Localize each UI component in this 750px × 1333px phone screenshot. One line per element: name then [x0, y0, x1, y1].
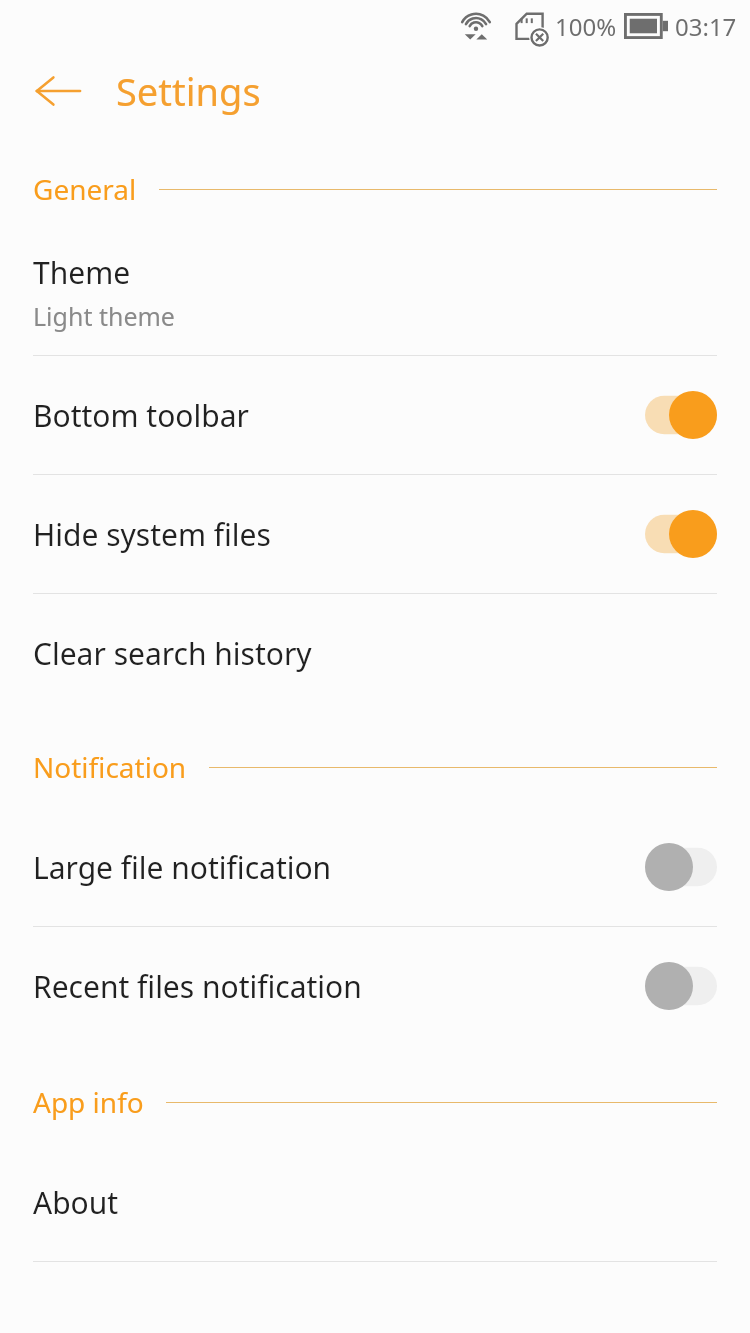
button[interactable]: About [0, 1143, 750, 1261]
staticText: About [33, 1182, 119, 1223]
button[interactable]: Clear search history [0, 594, 750, 712]
staticText: Theme [33, 252, 131, 293]
staticText: App info [33, 1083, 144, 1121]
staticText: 100% [555, 10, 617, 43]
staticText: Notification [33, 748, 187, 786]
staticText: Recent files notification [33, 966, 645, 1007]
button[interactable]: Bottom toolbar [0, 356, 750, 474]
staticText: Light theme [33, 299, 175, 333]
staticText: Large file notification [33, 847, 645, 888]
staticText: Clear search history [33, 633, 312, 674]
button[interactable]: Hide system files [0, 475, 750, 593]
button[interactable]: Theme [0, 238, 750, 355]
button[interactable]: Back [22, 55, 94, 127]
button[interactable]: Large file notification [0, 808, 750, 926]
button[interactable]: Recent files notification [0, 927, 750, 1045]
staticText: Hide system files [33, 514, 645, 555]
staticText: General [33, 170, 137, 208]
staticText: 03:17 [675, 10, 737, 43]
staticText: Settings [116, 65, 261, 117]
staticText: Bottom toolbar [33, 395, 645, 436]
